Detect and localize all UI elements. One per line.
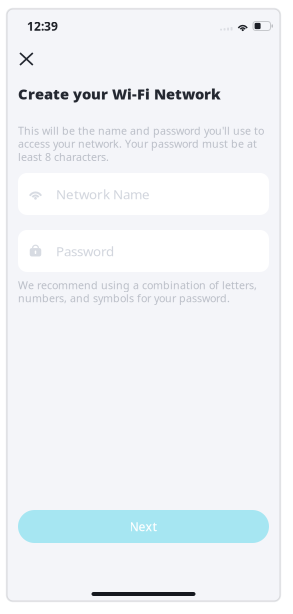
button[interactable]: Next (18, 510, 269, 543)
staticText: 12:39 (27, 18, 58, 34)
staticText: We recommend using a combination of lett… (18, 278, 257, 305)
staticText: Network Name (56, 185, 150, 203)
staticText: Next (129, 518, 157, 534)
staticText: Create your Wi-Fi Network (18, 84, 221, 103)
staticText: Password (56, 242, 114, 260)
button[interactable]: Close (13, 44, 40, 71)
staticText: This will be the name and password you'l… (18, 123, 264, 164)
button[interactable]: Network Name (18, 173, 269, 215)
button[interactable]: Password (18, 230, 269, 272)
